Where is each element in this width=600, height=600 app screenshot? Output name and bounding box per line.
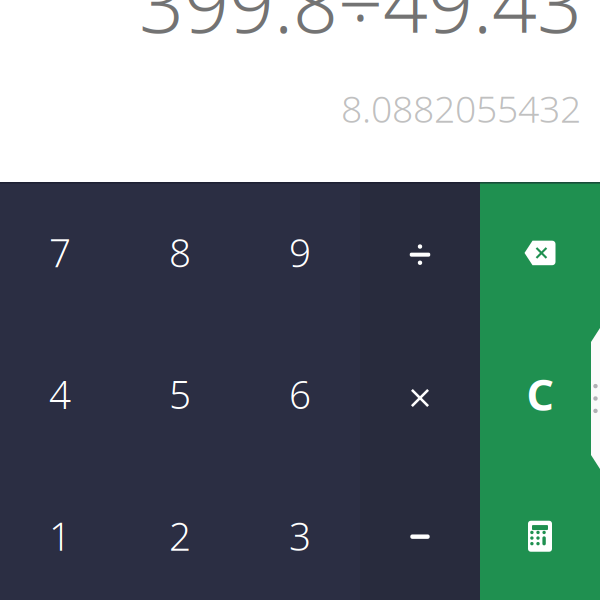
button[interactable]: Divide xyxy=(360,178,480,320)
staticText: 3 xyxy=(289,510,311,561)
staticText: 6 xyxy=(289,368,311,420)
button[interactable]: Subtract xyxy=(360,462,480,600)
button[interactable]: 4 xyxy=(0,320,120,462)
button[interactable]: Delete xyxy=(480,178,600,320)
button[interactable]: 1 xyxy=(0,462,120,600)
button[interactable]: 5 xyxy=(120,320,240,462)
staticText: C xyxy=(526,366,553,423)
staticText: 9 xyxy=(289,227,311,278)
button[interactable]: 9 xyxy=(240,178,360,320)
button[interactable]: 2 xyxy=(120,462,240,600)
button[interactable]: 8 xyxy=(120,178,240,320)
staticText: 7 xyxy=(49,227,71,278)
button[interactable]: 3 xyxy=(240,462,360,600)
button[interactable]: Drag handle xyxy=(591,328,600,469)
button[interactable]: Clear xyxy=(480,320,600,462)
button[interactable]: 7 xyxy=(0,178,120,320)
staticText: 8.0882055432 xyxy=(341,83,581,133)
staticText: 5 xyxy=(169,368,191,420)
staticText: 399.8÷49.43 xyxy=(139,0,582,54)
staticText: 4 xyxy=(49,368,71,420)
button[interactable]: 6 xyxy=(240,320,360,462)
button[interactable]: Multiply xyxy=(360,320,480,462)
staticText: 1 xyxy=(49,510,71,561)
staticText: 2 xyxy=(169,510,191,561)
button[interactable]: Calculator xyxy=(480,462,600,600)
staticText: 8 xyxy=(169,227,191,278)
